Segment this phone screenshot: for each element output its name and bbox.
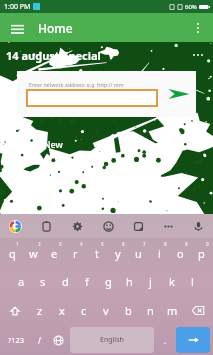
staticText: l xyxy=(191,274,194,289)
button[interactable]: h xyxy=(119,267,140,296)
button[interactable]: / xyxy=(30,327,49,353)
staticText: g xyxy=(105,274,112,289)
button[interactable]: i xyxy=(149,239,170,267)
staticText: What's New xyxy=(12,138,63,150)
staticText: . xyxy=(164,335,167,346)
button[interactable]: . xyxy=(156,327,175,353)
button[interactable]: Translate xyxy=(123,214,153,238)
button[interactable] xyxy=(26,89,158,107)
staticText: o xyxy=(177,246,184,261)
staticText: 5 xyxy=(101,241,104,247)
button[interactable]: Stickers xyxy=(93,214,123,238)
button[interactable]: b xyxy=(117,296,139,325)
staticText: t xyxy=(95,246,99,261)
staticText: z xyxy=(37,303,43,318)
button[interactable]: Backspace xyxy=(183,296,212,325)
button[interactable]: t xyxy=(86,239,107,267)
staticText: 2 xyxy=(38,241,41,247)
staticText: h xyxy=(126,274,133,289)
staticText: b xyxy=(125,303,132,318)
staticText: 1:00 PM xyxy=(4,2,31,12)
button[interactable]: Shift xyxy=(1,296,29,325)
button[interactable]: u xyxy=(128,239,149,267)
staticText: c xyxy=(81,303,87,318)
staticText: w xyxy=(29,246,38,261)
button[interactable]: j xyxy=(140,267,161,296)
staticText: s xyxy=(40,274,46,289)
button[interactable]: f xyxy=(76,267,98,296)
button[interactable]: Clipboard xyxy=(31,214,62,238)
staticText: p xyxy=(198,246,205,261)
button[interactable]: o xyxy=(170,239,191,267)
staticText: a xyxy=(18,274,25,289)
staticText: 14 august Special xyxy=(6,48,101,63)
button[interactable]: Voice input xyxy=(183,214,213,238)
button[interactable]: Section options xyxy=(188,45,208,65)
staticText: i xyxy=(158,246,161,261)
staticText: Enter network address: e.g. http:// mm xyxy=(29,81,124,88)
staticText: k xyxy=(169,274,175,289)
button[interactable]: Change language xyxy=(49,327,68,353)
button[interactable]: x xyxy=(51,296,73,325)
staticText: 60% xyxy=(185,3,197,11)
staticText: 3 xyxy=(59,241,62,247)
staticText: 1 xyxy=(16,241,19,247)
staticText: 7 xyxy=(143,241,146,247)
button[interactable]: e xyxy=(44,239,65,267)
button[interactable]: More xyxy=(153,214,183,238)
button[interactable]: s xyxy=(32,267,54,296)
staticText: 9 xyxy=(185,241,188,247)
button[interactable]: v xyxy=(95,296,117,325)
staticText: u xyxy=(135,246,142,261)
button[interactable]: m xyxy=(161,296,183,325)
button[interactable]: Open navigation menu xyxy=(6,17,28,39)
staticText: q xyxy=(9,246,16,261)
button[interactable]: Go xyxy=(162,71,196,117)
staticText: r xyxy=(73,246,78,261)
staticText: e xyxy=(51,246,58,261)
button[interactable]: Enter xyxy=(176,327,210,353)
button[interactable]: d xyxy=(54,267,76,296)
button[interactable]: k xyxy=(161,267,182,296)
button[interactable]: g xyxy=(98,267,119,296)
button[interactable]: l xyxy=(182,267,203,296)
staticText: / xyxy=(38,335,41,346)
staticText: n xyxy=(147,303,154,318)
button[interactable]: y xyxy=(107,239,128,267)
staticText: x xyxy=(59,303,65,318)
staticText: m xyxy=(167,303,178,318)
staticText: English xyxy=(100,335,124,345)
staticText: y xyxy=(115,246,121,261)
staticText: 4 xyxy=(80,241,83,247)
button[interactable]: More options xyxy=(187,17,209,39)
button[interactable]: z xyxy=(29,296,51,325)
staticText: j xyxy=(149,274,152,289)
button[interactable]: English xyxy=(70,327,154,353)
staticText: 0 xyxy=(206,241,209,247)
button[interactable]: Keyboard settings xyxy=(62,214,93,238)
staticText: 6 xyxy=(122,241,125,247)
button[interactable]: n xyxy=(139,296,161,325)
button[interactable]: r xyxy=(65,239,86,267)
button[interactable]: a xyxy=(10,267,32,296)
button[interactable]: Google search xyxy=(0,214,31,238)
staticText: f xyxy=(85,274,89,289)
button[interactable]: q xyxy=(1,239,23,267)
staticText: d xyxy=(62,274,69,289)
staticText: 8 xyxy=(164,241,167,247)
button[interactable]: w xyxy=(23,239,44,267)
staticText: ?123 xyxy=(8,335,25,345)
button[interactable]: ?123 xyxy=(2,327,30,353)
staticText: v xyxy=(103,303,109,318)
button[interactable]: c xyxy=(73,296,95,325)
staticText: Home xyxy=(38,20,73,36)
button[interactable]: p xyxy=(191,239,212,267)
